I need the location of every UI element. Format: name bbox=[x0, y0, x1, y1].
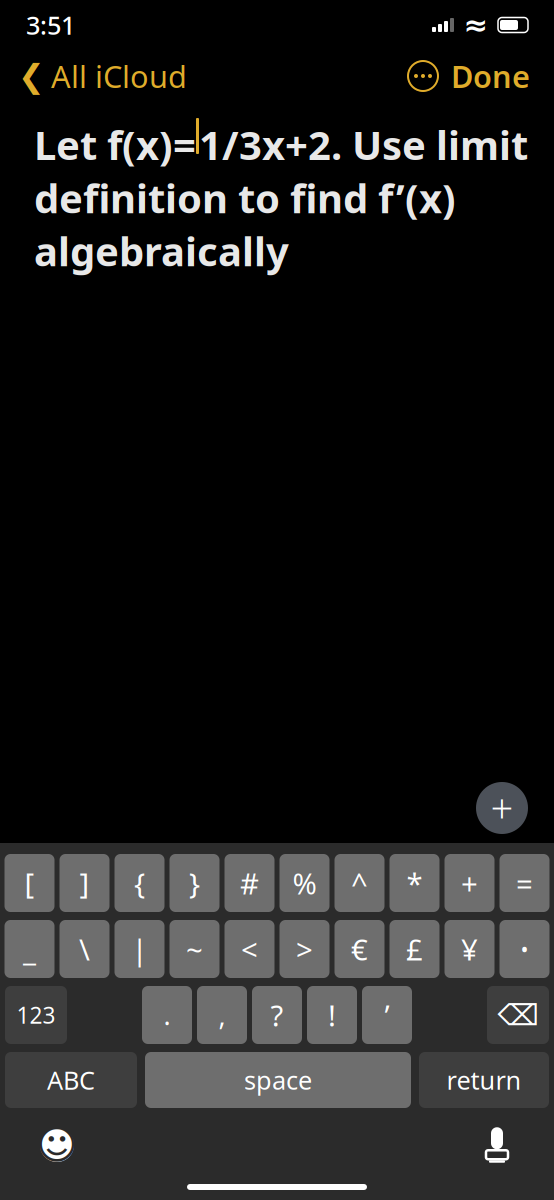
button[interactable]: ~ bbox=[169, 920, 219, 978]
staticText: ABC bbox=[47, 1063, 95, 1097]
staticText: % bbox=[292, 863, 316, 902]
staticText: definition to find f’(x) bbox=[34, 171, 456, 224]
staticText: return bbox=[446, 1063, 521, 1097]
button[interactable]: { bbox=[114, 854, 164, 912]
staticText: ~ bbox=[186, 929, 203, 968]
button[interactable]: ’ bbox=[362, 986, 412, 1044]
button[interactable]: return bbox=[419, 1052, 549, 1108]
staticText: ’ bbox=[384, 995, 389, 1034]
button[interactable]: Dictation bbox=[475, 1122, 519, 1168]
button[interactable]: ABC bbox=[5, 1052, 137, 1108]
staticText: \ bbox=[79, 929, 90, 968]
staticText: * bbox=[406, 863, 422, 902]
button[interactable]: } bbox=[169, 854, 219, 912]
staticText: € bbox=[351, 929, 368, 968]
button[interactable]: £ bbox=[389, 920, 439, 978]
staticText: £ bbox=[406, 929, 423, 968]
button[interactable]: # bbox=[224, 854, 274, 912]
staticText: + bbox=[490, 781, 513, 834]
staticText: Let f(x)= bbox=[34, 118, 196, 171]
staticText: _ bbox=[23, 929, 36, 968]
staticText: { bbox=[134, 863, 145, 902]
button[interactable]: ! bbox=[307, 986, 357, 1044]
button[interactable]: Add attachment bbox=[472, 778, 532, 838]
button[interactable]: ] bbox=[59, 854, 109, 912]
button[interactable]: space bbox=[145, 1052, 411, 1108]
staticText: ≈ bbox=[463, 8, 488, 42]
button[interactable]: > bbox=[279, 920, 329, 978]
staticText: , bbox=[218, 997, 225, 1033]
staticText: ⌫ bbox=[497, 998, 538, 1032]
staticText: space bbox=[244, 1063, 312, 1097]
staticText: ☺ bbox=[36, 1122, 78, 1168]
button[interactable]: Done bbox=[445, 54, 536, 98]
button[interactable]: • bbox=[499, 920, 549, 978]
staticText: • bbox=[520, 935, 528, 963]
button[interactable]: € bbox=[334, 920, 384, 978]
button[interactable]: . bbox=[142, 986, 192, 1044]
button[interactable]: Emoji bbox=[35, 1123, 79, 1167]
staticText: ! bbox=[328, 995, 336, 1034]
button[interactable]: ¥ bbox=[444, 920, 494, 978]
staticText: ^ bbox=[351, 863, 368, 902]
button[interactable]: < bbox=[224, 920, 274, 978]
button[interactable]: ? bbox=[252, 986, 302, 1044]
button[interactable]: , bbox=[197, 986, 247, 1044]
staticText: [ bbox=[24, 863, 34, 902]
button[interactable]: More options bbox=[401, 54, 445, 98]
staticText: } bbox=[189, 863, 200, 902]
staticText: < bbox=[241, 929, 258, 968]
button[interactable]: \ bbox=[59, 920, 109, 978]
staticText: All iCloud bbox=[51, 56, 187, 96]
staticText: = bbox=[516, 863, 533, 902]
staticText: algebraically bbox=[34, 224, 289, 277]
button[interactable]: + bbox=[444, 854, 494, 912]
staticText: ] bbox=[79, 863, 89, 902]
staticText: # bbox=[240, 863, 259, 902]
button[interactable]: * bbox=[389, 854, 439, 912]
staticText: | bbox=[131, 929, 147, 968]
staticText: ? bbox=[270, 995, 283, 1034]
staticText: ❮ bbox=[18, 58, 45, 94]
button[interactable]: = bbox=[499, 854, 549, 912]
staticText: . bbox=[163, 997, 170, 1033]
button[interactable]: % bbox=[279, 854, 329, 912]
button[interactable]: Delete bbox=[487, 986, 549, 1044]
button[interactable]: 123 bbox=[5, 986, 67, 1044]
staticText: 3:51 bbox=[26, 8, 75, 42]
staticText: Done bbox=[451, 56, 530, 96]
button[interactable]: | bbox=[114, 920, 164, 978]
button[interactable]: ^ bbox=[334, 854, 384, 912]
staticText: + bbox=[461, 863, 478, 902]
staticText: ¥ bbox=[461, 929, 478, 968]
button[interactable]: [ bbox=[4, 854, 54, 912]
staticText: 1/3x+2. Use limit bbox=[199, 118, 528, 171]
button[interactable]: _ bbox=[4, 920, 54, 978]
staticText: > bbox=[296, 929, 313, 968]
staticText: 123 bbox=[16, 1000, 55, 1030]
button[interactable]: ❮ bbox=[14, 54, 191, 98]
